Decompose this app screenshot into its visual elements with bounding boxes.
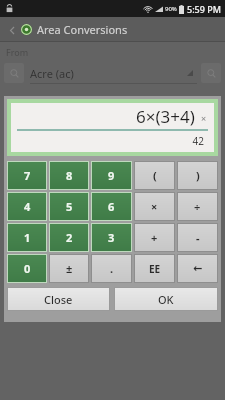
button[interactable]: ±: [49, 254, 89, 283]
button[interactable]: Navigate up: [4, 22, 20, 38]
button[interactable]: +: [134, 223, 175, 252]
staticText: 4: [24, 199, 31, 214]
staticText: 5: [66, 199, 73, 214]
button[interactable]: 2: [49, 223, 89, 252]
staticText: 8: [66, 168, 73, 183]
staticText: 6: [108, 199, 115, 214]
staticText: -: [196, 230, 200, 245]
button[interactable]: ←: [177, 254, 218, 283]
staticText: ←: [193, 262, 203, 275]
button[interactable]: Search unit: [4, 63, 24, 83]
staticText: From: [6, 46, 29, 58]
staticText: 9: [108, 168, 115, 183]
button[interactable]: 5: [49, 192, 89, 221]
button[interactable]: ÷: [177, 192, 218, 221]
staticText: 90%: [165, 5, 177, 13]
staticText: ×: [201, 112, 207, 121]
button[interactable]: Close: [7, 287, 110, 311]
staticText: 5:59 PM: [187, 3, 221, 15]
staticText: EE: [149, 262, 161, 276]
staticText: Acre (ac): [30, 66, 74, 81]
button[interactable]: 9: [91, 161, 132, 190]
staticText: 3: [108, 230, 115, 245]
staticText: (: [153, 168, 157, 183]
button[interactable]: 0: [7, 254, 47, 283]
button[interactable]: ×: [134, 192, 175, 221]
staticText: 1: [24, 230, 31, 245]
staticText: 42: [17, 134, 204, 148]
staticText: .: [110, 261, 114, 276]
button[interactable]: Search: [201, 63, 221, 83]
button[interactable]: 3: [91, 223, 132, 252]
button[interactable]: Clear: [199, 112, 208, 121]
button[interactable]: 1: [7, 223, 47, 252]
button[interactable]: ): [177, 161, 218, 190]
staticText: +: [151, 230, 158, 245]
staticText: ÷: [194, 199, 201, 214]
button[interactable]: 8: [49, 161, 89, 190]
staticText: 0: [24, 261, 31, 276]
staticText: ±: [66, 261, 73, 276]
staticText: 6×(3+4): [136, 105, 195, 128]
staticText: Area Conversions: [37, 22, 128, 37]
staticText: ×: [151, 199, 158, 214]
button[interactable]: Acre (ac): [30, 62, 197, 84]
staticText: 2: [66, 230, 73, 245]
button[interactable]: (: [134, 161, 175, 190]
button[interactable]: 6: [91, 192, 132, 221]
button[interactable]: 7: [7, 161, 47, 190]
staticText: 7: [24, 168, 31, 183]
button[interactable]: -: [177, 223, 218, 252]
staticText: OK: [158, 292, 174, 307]
button[interactable]: OK: [114, 287, 218, 311]
button[interactable]: EE: [134, 254, 175, 283]
button[interactable]: 4: [7, 192, 47, 221]
button[interactable]: .: [91, 254, 132, 283]
staticText: ): [196, 168, 200, 183]
staticText: Close: [44, 292, 73, 307]
